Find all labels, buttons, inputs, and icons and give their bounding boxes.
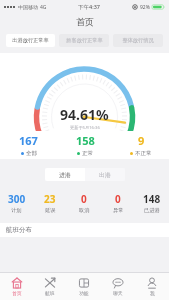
button[interactable]: 9 [113, 131, 169, 159]
staticText: 中国移动 [18, 4, 38, 10]
staticText: 我 [150, 290, 155, 296]
button[interactable]: 148 [135, 190, 169, 216]
button[interactable]: 首页 [0, 273, 33, 300]
staticText: 4G [40, 4, 47, 11]
staticText: 延误 [45, 207, 56, 214]
staticText: 300 [8, 192, 26, 206]
button[interactable]: 158 [57, 131, 113, 159]
button[interactable]: 聊天 [101, 273, 135, 300]
staticText: 计划 [11, 207, 22, 214]
staticText: 整体放行情况 [122, 37, 154, 44]
staticText: 已进港 [144, 207, 160, 214]
staticText: 9 [138, 133, 145, 148]
staticText: 全部 [26, 150, 37, 157]
staticText: 航班分布 [6, 226, 32, 234]
button[interactable]: 航班 [33, 273, 67, 300]
button[interactable]: 整体放行情况 [113, 34, 163, 47]
staticText: 聊天 [113, 290, 123, 296]
button[interactable]: 0 [101, 190, 135, 216]
staticText: 167 [19, 133, 38, 148]
staticText: 首页 [12, 290, 22, 296]
button[interactable]: 我 [135, 273, 169, 300]
button[interactable]: 23 [33, 190, 67, 216]
staticText: 158 [76, 133, 95, 148]
staticText: 正常 [82, 150, 93, 157]
staticText: 94.61% [60, 105, 109, 124]
staticText: 首页 [76, 16, 94, 27]
staticText: 进港 [59, 171, 71, 178]
staticText: 出港 [99, 171, 111, 178]
staticText: 不正常 [135, 150, 152, 157]
staticText: 航班 [45, 290, 55, 296]
staticText: 92% [140, 4, 150, 11]
button[interactable]: 0 [67, 190, 101, 216]
staticText: 更新于5月16:36 [70, 125, 100, 131]
staticText: 功能 [79, 290, 89, 296]
staticText: 出港放行正常率 [12, 37, 49, 44]
staticText: 取消 [79, 207, 90, 214]
staticText: 异常 [113, 207, 124, 214]
button[interactable]: 进港 [45, 168, 85, 181]
button[interactable]: 功能 [67, 273, 101, 300]
staticText: 0 [81, 192, 87, 206]
button[interactable]: 167 [0, 131, 57, 159]
button[interactable]: 300 [0, 190, 33, 216]
button[interactable]: 出港放行正常率 [6, 34, 55, 47]
staticText: 下午4:37 [78, 3, 100, 11]
staticText: 23 [44, 192, 56, 206]
staticText: 148 [143, 192, 161, 206]
staticText: 0 [115, 192, 121, 206]
button[interactable]: 旅客放行正常率 [59, 34, 109, 47]
staticText: 旅客放行正常率 [66, 37, 103, 44]
button[interactable]: 出港 [85, 168, 125, 181]
